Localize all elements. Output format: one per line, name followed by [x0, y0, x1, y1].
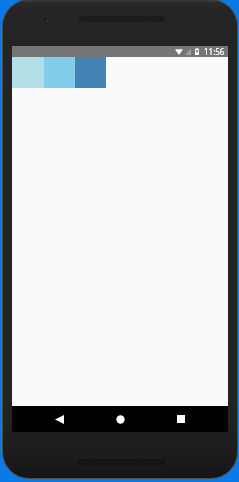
button[interactable]: Back — [41, 406, 77, 432]
staticText: 11:56 — [204, 46, 225, 57]
button[interactable]: Home — [102, 406, 138, 432]
button[interactable]: Recent apps — [163, 406, 199, 432]
